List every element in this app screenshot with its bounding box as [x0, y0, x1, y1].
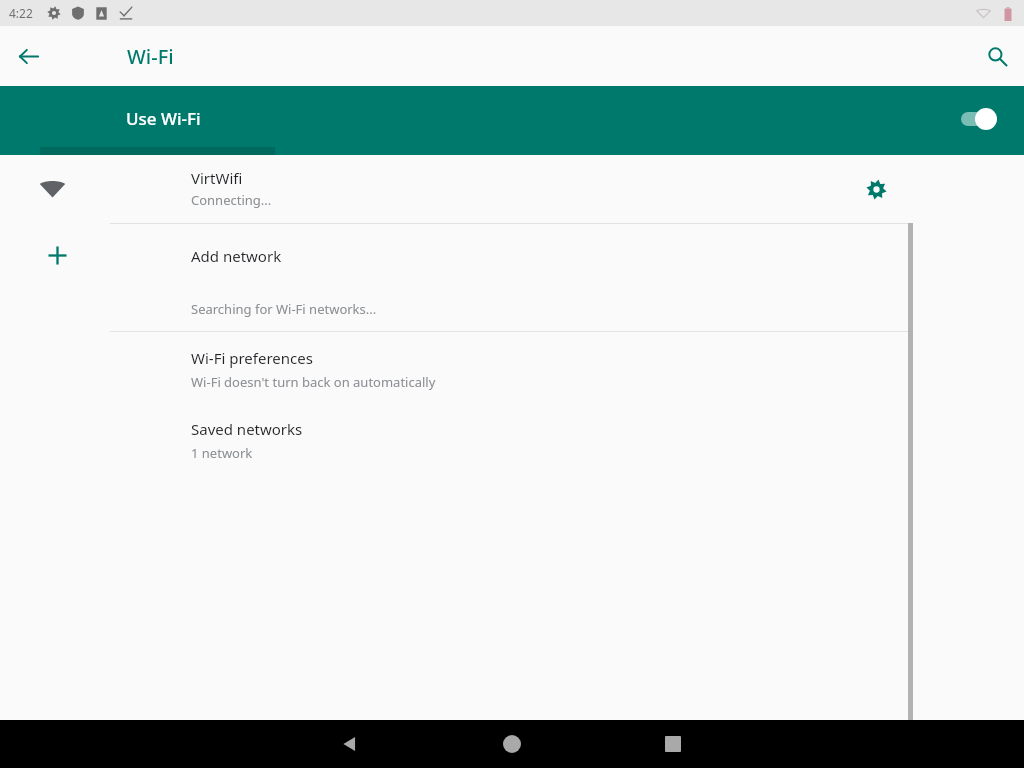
staticText: 1 network — [191, 444, 253, 462]
button[interactable]: Network settings — [856, 169, 896, 209]
staticText: VirtWifi — [191, 168, 243, 188]
staticText: Wi-Fi preferences — [191, 348, 313, 368]
staticText: 4:22 — [9, 5, 33, 21]
button[interactable]: Back — [329, 724, 369, 764]
button[interactable]: Add network — [0, 224, 1024, 287]
button[interactable]: Back — [8, 36, 48, 76]
staticText: Searching for Wi-Fi networks... — [191, 300, 377, 318]
button[interactable]: Saved networks — [0, 405, 1024, 469]
button[interactable]: Recents — [653, 724, 693, 764]
staticText: Add network — [191, 246, 282, 266]
staticText: Connecting... — [191, 191, 272, 209]
button[interactable]: Use Wi-Fi — [0, 86, 1024, 155]
staticText: Saved networks — [191, 419, 303, 439]
staticText: Use Wi-Fi — [126, 107, 201, 130]
button[interactable]: Home — [492, 724, 532, 764]
staticText: Wi-Fi doesn't turn back on automatically — [191, 373, 436, 391]
button[interactable]: Wi-Fi preferences — [0, 332, 1024, 398]
button[interactable]: VirtWifi — [0, 155, 1024, 223]
button[interactable]: Search — [976, 35, 1018, 77]
staticText: Wi-Fi — [127, 43, 174, 70]
